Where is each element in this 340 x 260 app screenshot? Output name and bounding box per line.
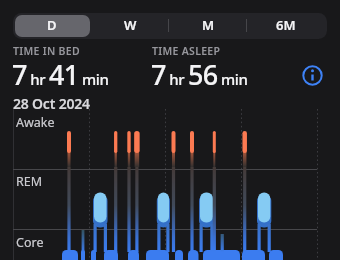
staticText: 7 hr 56 min bbox=[151, 56, 248, 93]
staticText: 28 Oct 2024 bbox=[13, 94, 90, 113]
staticText: Core bbox=[16, 234, 44, 251]
staticText: TIME IN BED bbox=[13, 44, 80, 58]
staticText: 6M bbox=[276, 16, 296, 34]
staticText: M bbox=[202, 16, 215, 34]
staticText: D bbox=[47, 16, 57, 34]
staticText: 7 hr 41 min bbox=[12, 56, 109, 93]
staticText: REM bbox=[16, 173, 43, 190]
staticText: Awake bbox=[16, 114, 55, 131]
staticText: W bbox=[124, 16, 137, 34]
staticText: TIME ASLEEP bbox=[152, 44, 221, 58]
